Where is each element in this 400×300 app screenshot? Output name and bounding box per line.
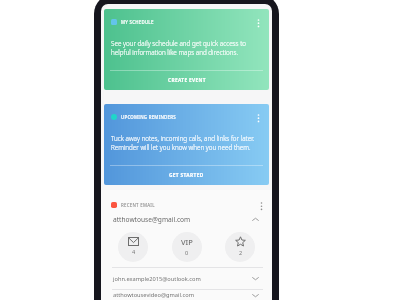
button[interactable]: GET STARTED (104, 166, 269, 185)
button[interactable]: More options (253, 114, 263, 120)
staticText: GET STARTED (169, 172, 204, 179)
staticText: See your daily schedule and get quick ac… (111, 39, 246, 48)
staticText: atthowtousevideo@gmail.com (113, 291, 195, 299)
button[interactable]: More options (256, 202, 266, 208)
staticText: 0 (185, 249, 189, 256)
other: Expand (251, 291, 260, 300)
staticText: UPCOMING REMINDERS (121, 114, 176, 120)
staticText: 4 (132, 248, 136, 255)
staticText: 2 (239, 249, 243, 256)
other: Expand (251, 274, 260, 283)
staticText: VIP (181, 237, 193, 247)
staticText: atthowtouse@gmail.com (113, 215, 191, 224)
other: Collapse (251, 215, 260, 224)
button[interactable]: john.example2015@outlook.com (101, 268, 272, 289)
staticText: Tuck away notes, incoming calls, and lin… (111, 134, 255, 143)
button[interactable]: atthowtouse@gmail.com (101, 212, 272, 226)
staticText: helpful information like maps and direct… (111, 48, 238, 57)
other: Starred (235, 236, 246, 247)
staticText: MY SCHEDULE (121, 19, 154, 25)
button[interactable]: Inbox (118, 232, 148, 262)
staticText: CREATE EVENT (168, 77, 206, 84)
other: Inbox (128, 237, 139, 246)
staticText: john.example2015@outlook.com (113, 275, 201, 283)
button[interactable]: More options (253, 19, 263, 25)
staticText: RECENT EMAIL (121, 202, 155, 208)
staticText: Reminder will let you know when you need… (111, 143, 251, 152)
button[interactable]: atthowtousevideo@gmail.com (101, 290, 272, 300)
button[interactable]: Starred (225, 232, 255, 262)
button[interactable]: VIP (172, 232, 202, 262)
button[interactable]: CREATE EVENT (104, 71, 269, 90)
